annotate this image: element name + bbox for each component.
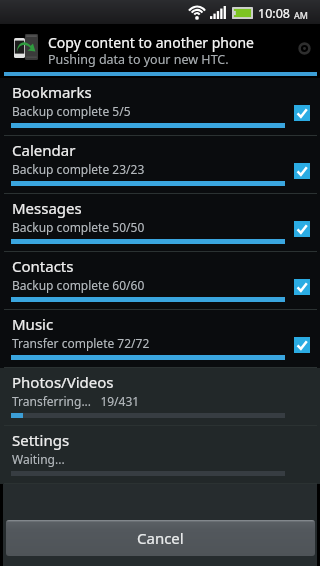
button[interactable]: Working [294, 38, 314, 58]
staticText: Backup complete 23/23 [12, 161, 145, 177]
staticText: Photos/Videos [12, 372, 114, 392]
staticText: Backup complete 60/60 [12, 277, 145, 293]
staticText: Transfer complete 72/72 [12, 335, 150, 351]
staticText: 10:08 [258, 5, 290, 22]
staticText: Transferring... 19/431 [12, 393, 140, 409]
staticText: Backup complete 50/50 [12, 219, 145, 235]
button[interactable]: Done [294, 163, 310, 179]
staticText: Calendar [12, 140, 76, 160]
staticText: Settings [12, 430, 70, 450]
button[interactable]: Music [0, 310, 320, 368]
staticText: Copy content to another phone [48, 33, 255, 52]
staticText: Backup complete 5/5 [12, 103, 131, 119]
button[interactable]: Calendar [0, 136, 320, 194]
button[interactable]: Settings [0, 426, 320, 484]
staticText: Bookmarks [12, 82, 92, 102]
staticText: Cancel [137, 528, 184, 548]
staticText: Messages [12, 198, 82, 218]
button[interactable]: Done [294, 105, 310, 121]
button[interactable]: Done [294, 337, 310, 353]
staticText: Waiting... [12, 451, 65, 467]
button[interactable]: Bookmarks [0, 78, 320, 136]
button[interactable]: Messages [0, 194, 320, 252]
staticText: AM [294, 9, 308, 21]
button[interactable]: Done [294, 221, 310, 237]
button[interactable]: Contacts [0, 252, 320, 310]
button[interactable]: Photos/Videos [0, 368, 320, 426]
button[interactable]: Done [294, 279, 310, 295]
staticText: Pushing data to your new HTC. [48, 51, 229, 68]
button[interactable]: Cancel [6, 520, 315, 556]
staticText: Music [12, 314, 54, 334]
staticText: Contacts [12, 256, 74, 276]
